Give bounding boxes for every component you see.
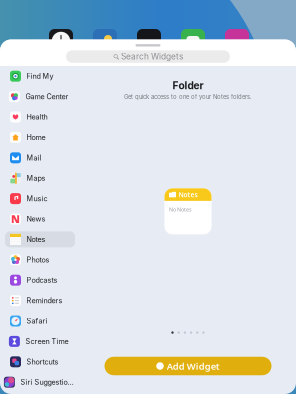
staticText: Game Center bbox=[25, 92, 68, 101]
staticText: Add Widget bbox=[167, 360, 220, 372]
staticText: Reminders bbox=[27, 296, 63, 305]
staticText: Music bbox=[27, 194, 48, 203]
staticText: Screen Time bbox=[25, 337, 68, 346]
staticText: News bbox=[27, 215, 46, 223]
button[interactable]: Screen Time bbox=[0, 331, 81, 352]
button[interactable]: Find My bbox=[0, 66, 80, 86]
button[interactable]: Notes bbox=[0, 229, 80, 250]
staticText: Search Widgets bbox=[121, 51, 183, 61]
staticText: Notes bbox=[178, 190, 197, 199]
button[interactable]: Game Center bbox=[0, 86, 81, 107]
staticText: Mail bbox=[27, 153, 42, 162]
button[interactable]: Maps bbox=[0, 168, 80, 188]
button[interactable]: Shortcuts bbox=[0, 352, 80, 372]
button[interactable]: Search Widgets bbox=[66, 50, 230, 63]
staticText: N bbox=[11, 212, 20, 226]
button[interactable]: Mail bbox=[0, 148, 80, 168]
button[interactable]: Photos bbox=[0, 250, 80, 270]
button[interactable]: Safari bbox=[0, 311, 80, 331]
staticText: No Notes bbox=[169, 206, 192, 213]
staticText: Safari bbox=[27, 317, 48, 325]
staticText: Home bbox=[27, 133, 46, 142]
staticText: Notes bbox=[27, 235, 46, 244]
staticText: Siri Suggestio… bbox=[20, 378, 73, 386]
button[interactable]: Add Widget bbox=[104, 357, 271, 375]
button[interactable]: Podcasts bbox=[0, 270, 80, 290]
staticText: Folder bbox=[172, 79, 203, 92]
button[interactable]: N bbox=[0, 209, 80, 229]
staticText: Shortcuts bbox=[27, 357, 59, 366]
staticText: Podcasts bbox=[27, 276, 58, 284]
staticText: Health bbox=[27, 113, 48, 121]
button[interactable]: Siri Suggestio… bbox=[0, 372, 86, 392]
button[interactable]: Health bbox=[0, 107, 80, 127]
button[interactable]: Reminders bbox=[0, 290, 80, 311]
button[interactable]: Music bbox=[0, 188, 80, 209]
button[interactable]: Home bbox=[0, 127, 80, 148]
staticText: Find My bbox=[27, 72, 54, 80]
staticText: Maps bbox=[27, 174, 46, 182]
staticText: Photos bbox=[27, 255, 50, 264]
staticText: Get quick access to one of your Notes fo… bbox=[124, 93, 252, 100]
